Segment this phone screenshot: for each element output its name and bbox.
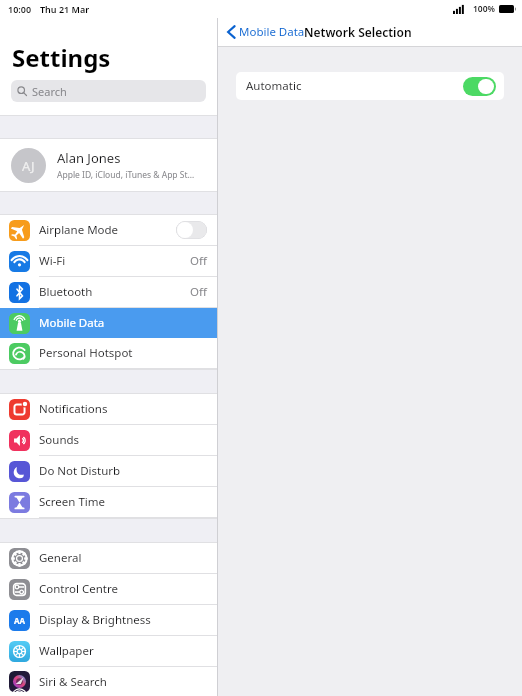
button[interactable]: Control Centre: [0, 574, 217, 604]
button[interactable]: Automatic network selection toggle: [463, 77, 496, 96]
staticText: Thu 21 Mar: [40, 3, 90, 15]
staticText: Control Centre: [39, 581, 207, 597]
staticText: Search: [32, 84, 67, 99]
staticText: Off: [190, 253, 207, 269]
staticText: Settings: [12, 41, 111, 74]
staticText: Apple ID, iCloud, iTunes & App St…: [57, 169, 195, 181]
staticText: Mobile Data: [239, 24, 305, 40]
staticText: Network Selection: [304, 24, 412, 40]
staticText: Automatic: [246, 78, 463, 94]
button[interactable]: Sounds: [0, 425, 217, 455]
staticText: Airplane Mode: [39, 222, 176, 238]
button[interactable]: Mobile Data: [0, 308, 217, 338]
button[interactable]: Notifications: [0, 394, 217, 424]
staticText: Screen Time: [39, 494, 207, 510]
button[interactable]: Search: [11, 80, 206, 102]
staticText: Wallpaper: [39, 643, 207, 659]
button[interactable]: Do Not Disturb: [0, 456, 217, 486]
button[interactable]: Airplane Mode: [0, 215, 217, 245]
button[interactable]: Wi-Fi: [0, 246, 217, 276]
button[interactable]: AJ: [0, 139, 217, 191]
staticText: Bluetooth: [39, 284, 190, 300]
staticText: 100%: [473, 3, 496, 15]
button[interactable]: Wallpaper: [0, 636, 217, 666]
staticText: Do Not Disturb: [39, 463, 207, 479]
button[interactable]: General: [0, 543, 217, 573]
button[interactable]: Mobile Data: [227, 24, 305, 40]
button[interactable]: Airplane Mode toggle: [176, 221, 207, 239]
staticText: AJ: [22, 157, 35, 175]
staticText: Off: [190, 284, 207, 300]
button[interactable]: Personal Hotspot: [0, 338, 217, 368]
button[interactable]: Automatic: [236, 72, 504, 100]
staticText: Mobile Data: [39, 315, 207, 331]
staticText: Wi-Fi: [39, 253, 190, 269]
button[interactable]: Screen Time: [0, 487, 217, 517]
staticText: Alan Jones: [57, 149, 121, 167]
staticText: AA: [14, 615, 26, 626]
staticText: Display & Brightness: [39, 612, 207, 628]
staticText: Siri & Search: [39, 674, 207, 690]
button[interactable]: Siri & Search: [0, 667, 217, 696]
button[interactable]: Bluetooth: [0, 277, 217, 307]
staticText: Personal Hotspot: [39, 345, 207, 361]
button[interactable]: AA: [0, 605, 217, 635]
staticText: Sounds: [39, 432, 207, 448]
staticText: 10:00: [8, 3, 32, 15]
staticText: General: [39, 550, 207, 566]
staticText: Notifications: [39, 401, 207, 417]
